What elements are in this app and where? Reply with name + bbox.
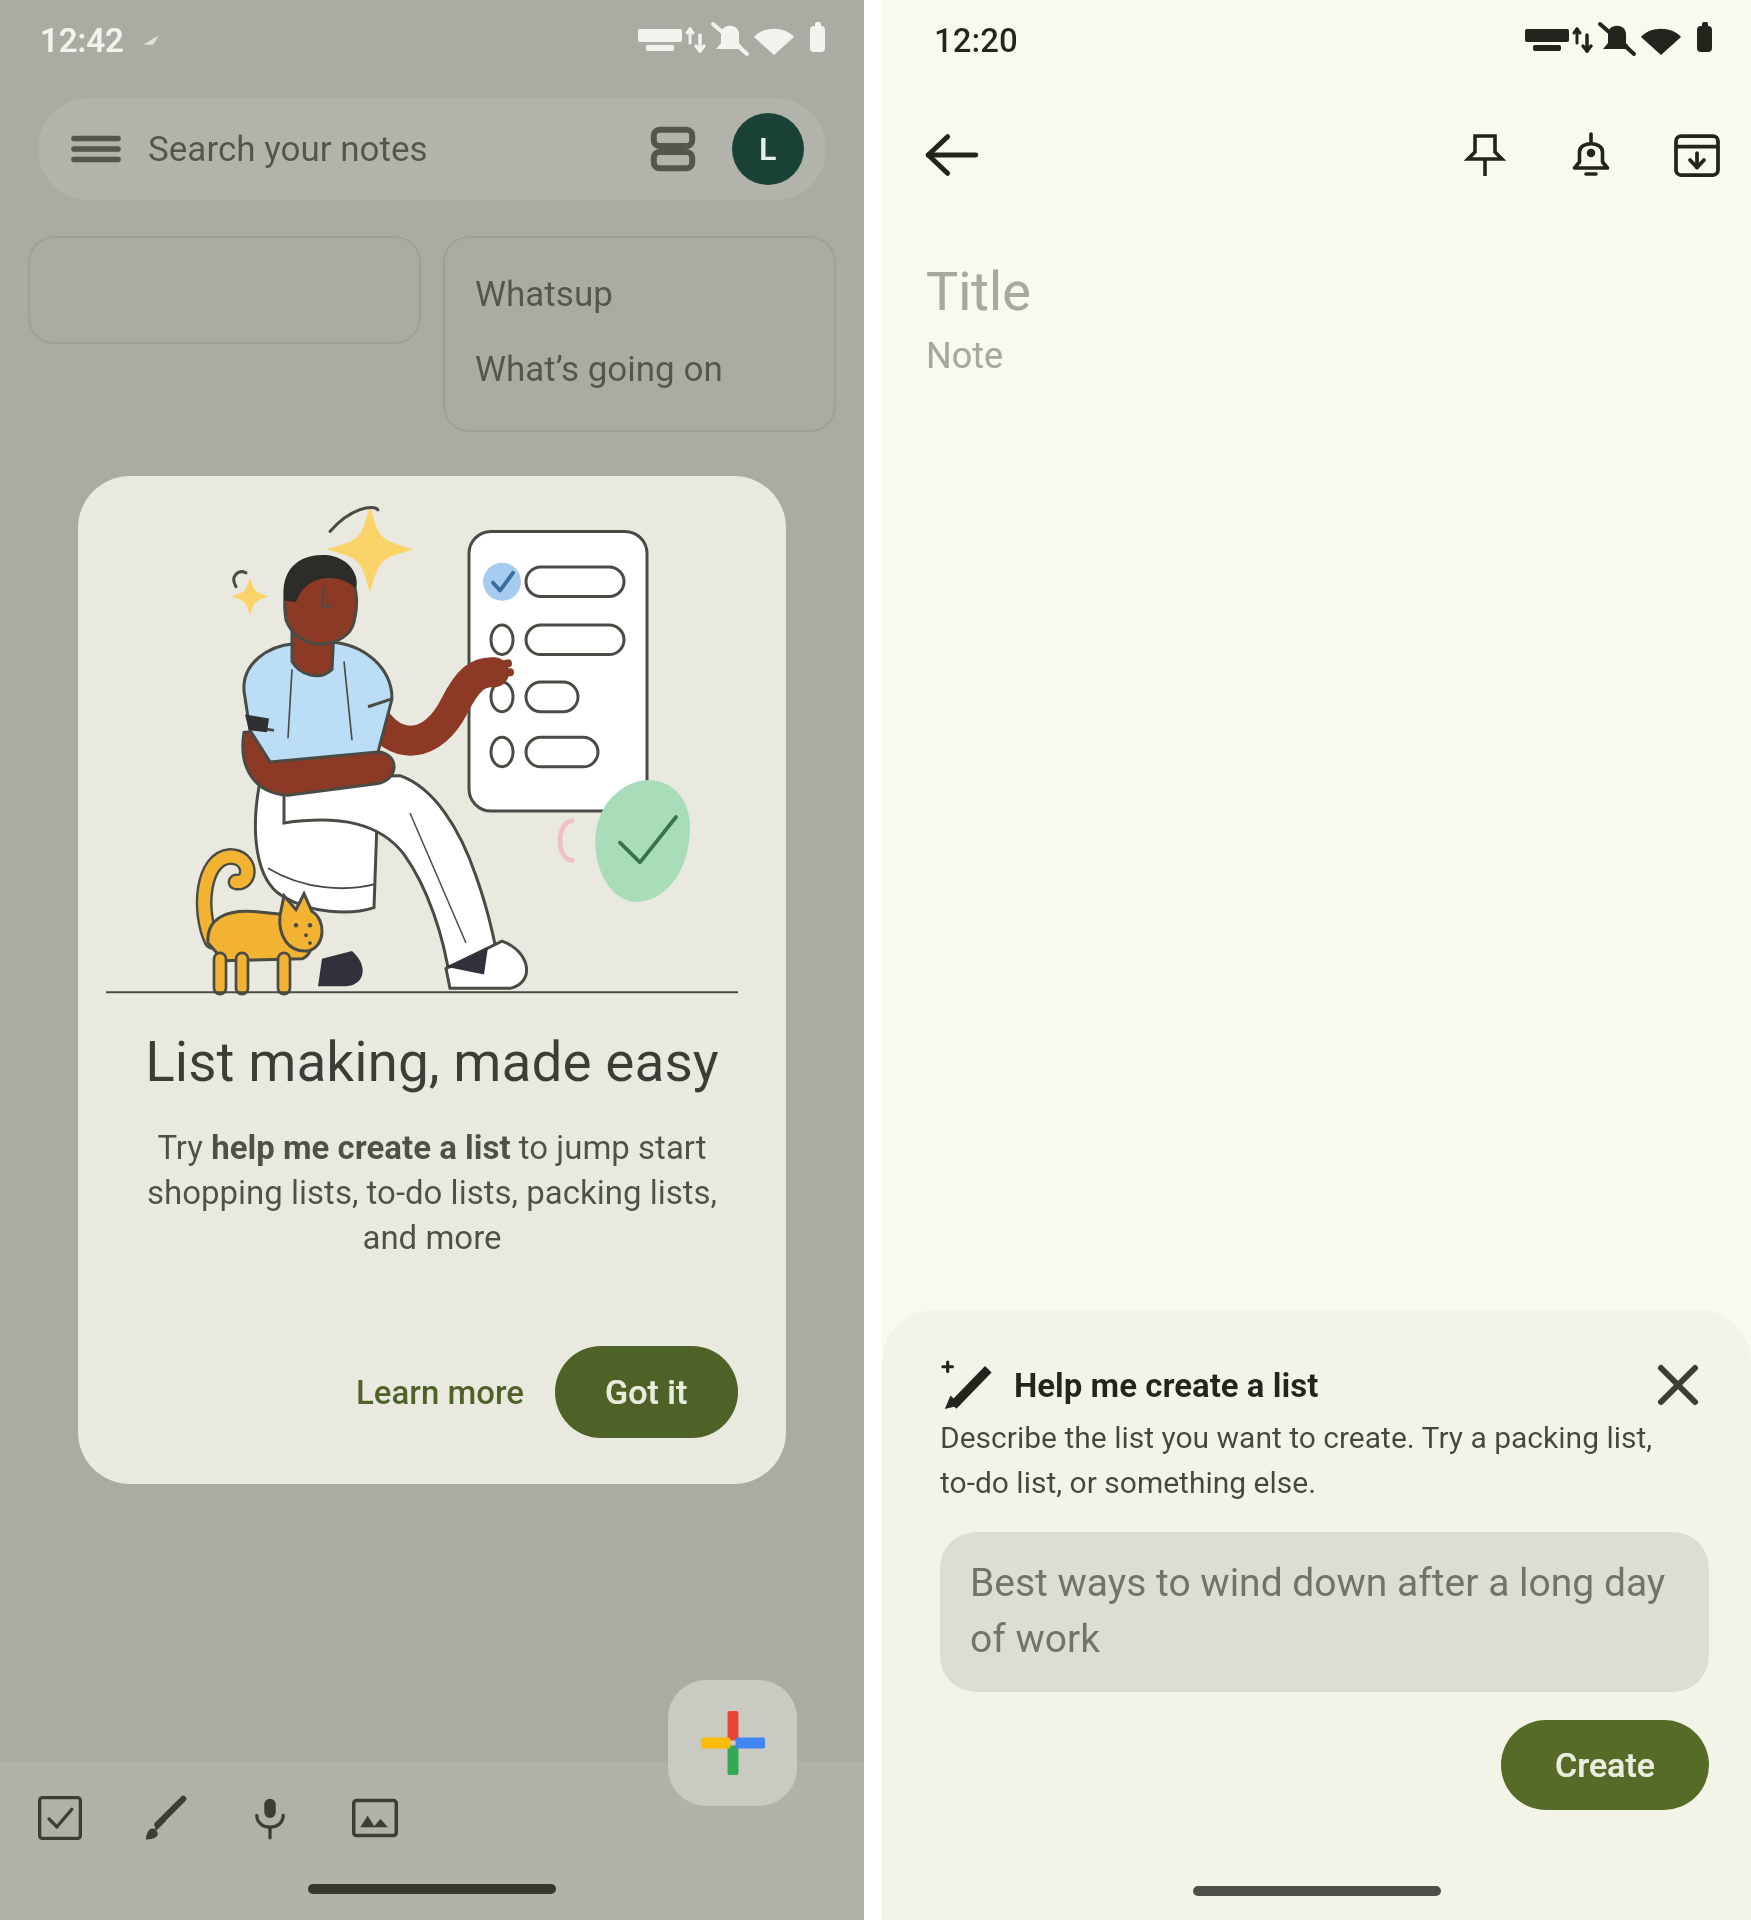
staticText: Describe the list you want to create. Tr… <box>940 1420 1709 1501</box>
button[interactable]: Best ways to wind down after a long day … <box>940 1532 1709 1692</box>
staticText: Try help me create a list to jump start … <box>122 1128 742 1257</box>
staticText: 12:42 <box>40 21 124 60</box>
button[interactable]: Create <box>1501 1720 1709 1810</box>
staticText: List making, made easy <box>78 1030 786 1094</box>
button[interactable]: Close <box>1647 1354 1709 1416</box>
staticText: Help me create a list <box>1014 1366 1319 1405</box>
button[interactable]: New drawing <box>121 1774 209 1862</box>
staticText: Best ways to wind down after a long day … <box>970 1560 1689 1662</box>
button[interactable]: New image note <box>331 1774 419 1862</box>
staticText: Learn more <box>356 1373 525 1412</box>
staticText: Search your notes <box>148 129 428 170</box>
staticText: Note <box>926 335 1004 377</box>
button[interactable]: New voice note <box>226 1774 314 1862</box>
staticText: What’s going on <box>475 349 723 390</box>
staticText: 12:20 <box>934 21 1018 60</box>
staticText: Create <box>1555 1745 1655 1785</box>
button[interactable]: Remind me <box>1543 107 1639 203</box>
button[interactable]: New list <box>16 1774 104 1862</box>
button[interactable]: Learn more <box>340 1357 541 1428</box>
staticText: Got it <box>605 1372 688 1412</box>
staticText: Title <box>926 260 1031 323</box>
button[interactable]: Pin note <box>1437 107 1533 203</box>
button[interactable]: Account <box>732 113 804 185</box>
staticText: Whatsup <box>475 274 613 315</box>
button[interactable]: Toggle list view <box>642 118 704 180</box>
button[interactable]: Search your notes <box>38 98 826 200</box>
button[interactable]: Archive <box>1649 107 1745 203</box>
button[interactable]: Back <box>904 107 1000 203</box>
button[interactable]: Got it <box>555 1346 738 1438</box>
staticText: L <box>759 130 777 168</box>
button[interactable]: Whatsup <box>443 236 836 432</box>
button[interactable]: New note <box>668 1680 797 1806</box>
